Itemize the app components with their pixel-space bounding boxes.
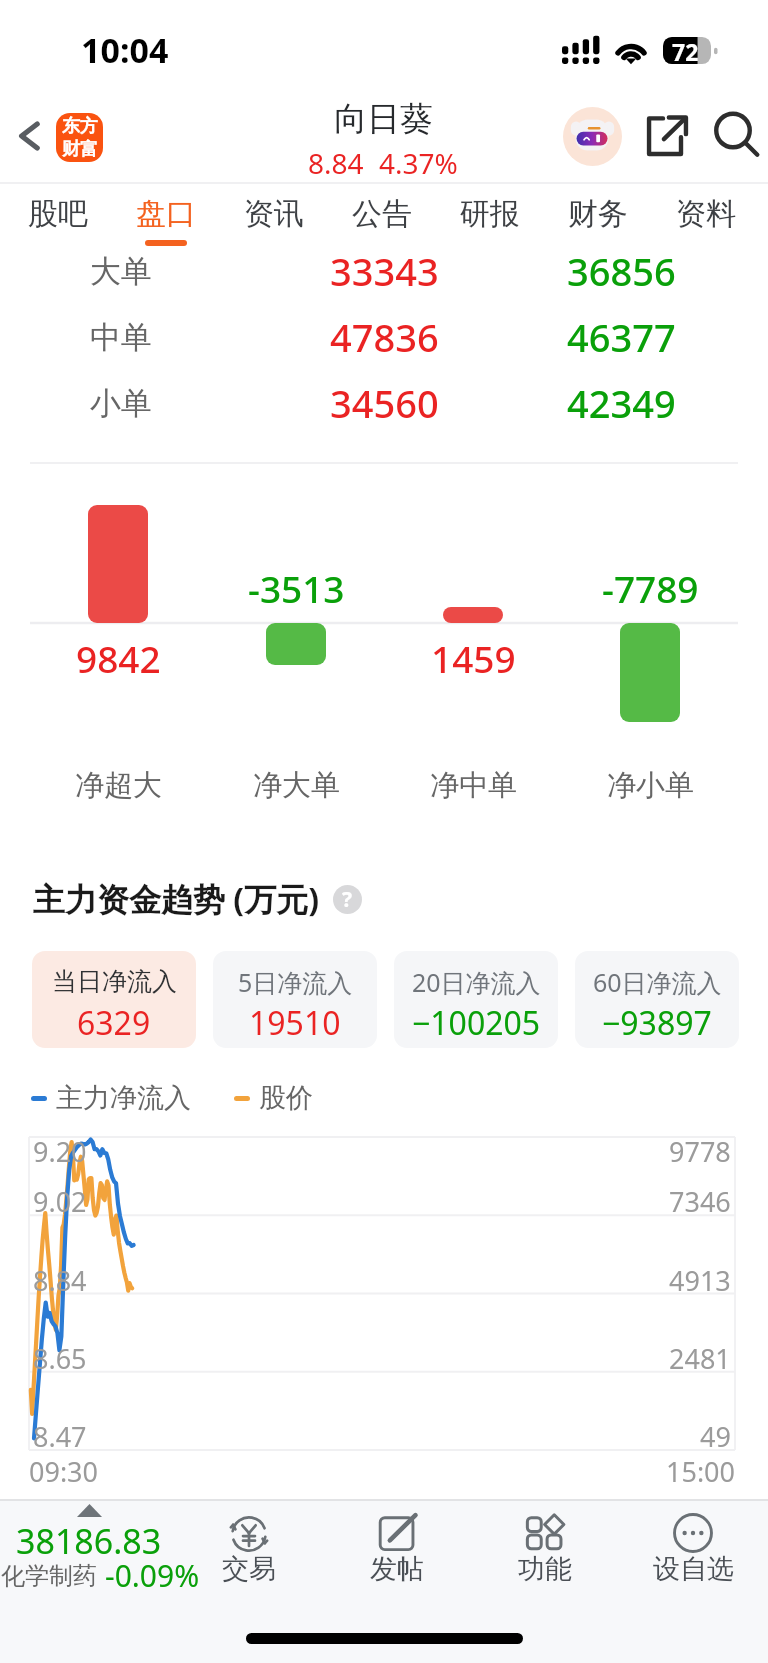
staticText: −100205 [412, 1001, 541, 1037]
staticText: 42349 [567, 377, 676, 429]
staticText: 东方 [62, 115, 98, 138]
staticText: 19510 [249, 1001, 341, 1037]
staticText: 72 [672, 36, 699, 63]
staticText: 中单 [90, 318, 152, 357]
button[interactable]: 小单 [0, 370, 768, 436]
button[interactable]: 38186.83 [0, 1499, 200, 1609]
staticText: 10:04 [81, 27, 169, 73]
button[interactable]: Share [641, 109, 694, 162]
staticText: 15:00 [666, 1453, 736, 1490]
staticText: 8.47 [33, 1418, 87, 1455]
button[interactable]: EastMoney [56, 113, 103, 162]
staticText: 盘口 [136, 195, 196, 233]
staticText: 1459 [431, 633, 516, 683]
staticText: 设自选 [653, 1552, 734, 1584]
button[interactable]: Help [333, 885, 362, 914]
button[interactable]: 大单 [0, 238, 768, 304]
staticText: 8.84 [33, 1262, 87, 1299]
staticText: 财务 [568, 195, 628, 233]
staticText: 研报 [460, 195, 520, 233]
staticText: 公告 [352, 195, 412, 233]
staticText: 9.20 [33, 1133, 87, 1170]
staticText: 大单 [90, 252, 152, 291]
staticText: 向日葵 [334, 98, 433, 140]
button[interactable]: 公告 [328, 183, 436, 247]
staticText: 股吧 [28, 195, 88, 233]
staticText: 交易 [222, 1552, 276, 1584]
staticText: 股价 [259, 1081, 313, 1115]
button[interactable]: 中单 [0, 304, 768, 370]
staticText: 60日净流入 [593, 965, 722, 997]
staticText: 9842 [76, 633, 161, 683]
staticText: 当日净流入 [52, 966, 177, 997]
button[interactable]: Back [8, 114, 52, 158]
staticText: 9.02 [33, 1183, 87, 1220]
staticText: 主力资金趋势 (万元) [33, 877, 320, 921]
staticText: 20日净流入 [412, 965, 541, 997]
button[interactable]: 功能 [471, 1499, 619, 1609]
button[interactable]: 当日净流入 [32, 951, 196, 1048]
button[interactable]: 股吧 [4, 183, 112, 247]
staticText: 6329 [77, 1001, 151, 1037]
staticText: 34560 [330, 377, 439, 429]
staticText: 主力净流入 [56, 1081, 191, 1115]
staticText: 资讯 [244, 195, 304, 233]
button[interactable]: 研报 [436, 183, 544, 247]
staticText: 8.84 [308, 144, 364, 182]
staticText: 小单 [90, 384, 152, 423]
button[interactable]: Search [707, 107, 763, 163]
button[interactable]: 设自选 [619, 1499, 767, 1609]
button[interactable]: 财务 [544, 183, 652, 247]
staticText: 33343 [330, 245, 439, 297]
staticText: 09:30 [29, 1453, 99, 1490]
staticText: 净大单 [253, 767, 340, 804]
staticText: -0.09% [105, 1555, 199, 1596]
staticText: 7346 [669, 1183, 731, 1220]
staticText: 8.65 [33, 1340, 87, 1377]
staticText: -3513 [248, 563, 345, 613]
staticText: 财富 [62, 138, 98, 161]
staticText: 36856 [567, 245, 676, 297]
staticText: 发帖 [370, 1552, 424, 1584]
staticText: 5日净流入 [238, 965, 353, 997]
staticText: 38186.83 [16, 1518, 162, 1564]
staticText: 49 [700, 1418, 731, 1455]
staticText: 净小单 [607, 767, 694, 804]
button[interactable]: AI assistant [563, 107, 622, 166]
staticText: −93897 [602, 1001, 712, 1037]
staticText: 4.37% [379, 144, 458, 182]
button[interactable]: 盘口 [112, 183, 220, 247]
button[interactable]: 5日净流入 [213, 951, 377, 1048]
staticText: 资料 [676, 195, 736, 233]
staticText: 47836 [330, 311, 439, 363]
staticText: ? [342, 885, 353, 914]
button[interactable]: 20日净流入 [394, 951, 558, 1048]
staticText: 4913 [669, 1262, 731, 1299]
button[interactable]: 资讯 [220, 183, 328, 247]
button[interactable]: 资料 [652, 183, 760, 247]
staticText: 46377 [567, 311, 676, 363]
staticText: -7789 [602, 563, 699, 613]
button[interactable]: 60日净流入 [575, 951, 739, 1048]
staticText: 2481 [669, 1340, 731, 1377]
staticText: 净超大 [75, 767, 162, 804]
staticText: 功能 [518, 1552, 572, 1584]
staticText: 化学制药 [1, 1561, 97, 1591]
staticText: 净中单 [430, 767, 517, 804]
button[interactable]: 交易 [175, 1499, 323, 1609]
staticText: 9778 [669, 1133, 731, 1170]
button[interactable]: 发帖 [323, 1499, 471, 1609]
